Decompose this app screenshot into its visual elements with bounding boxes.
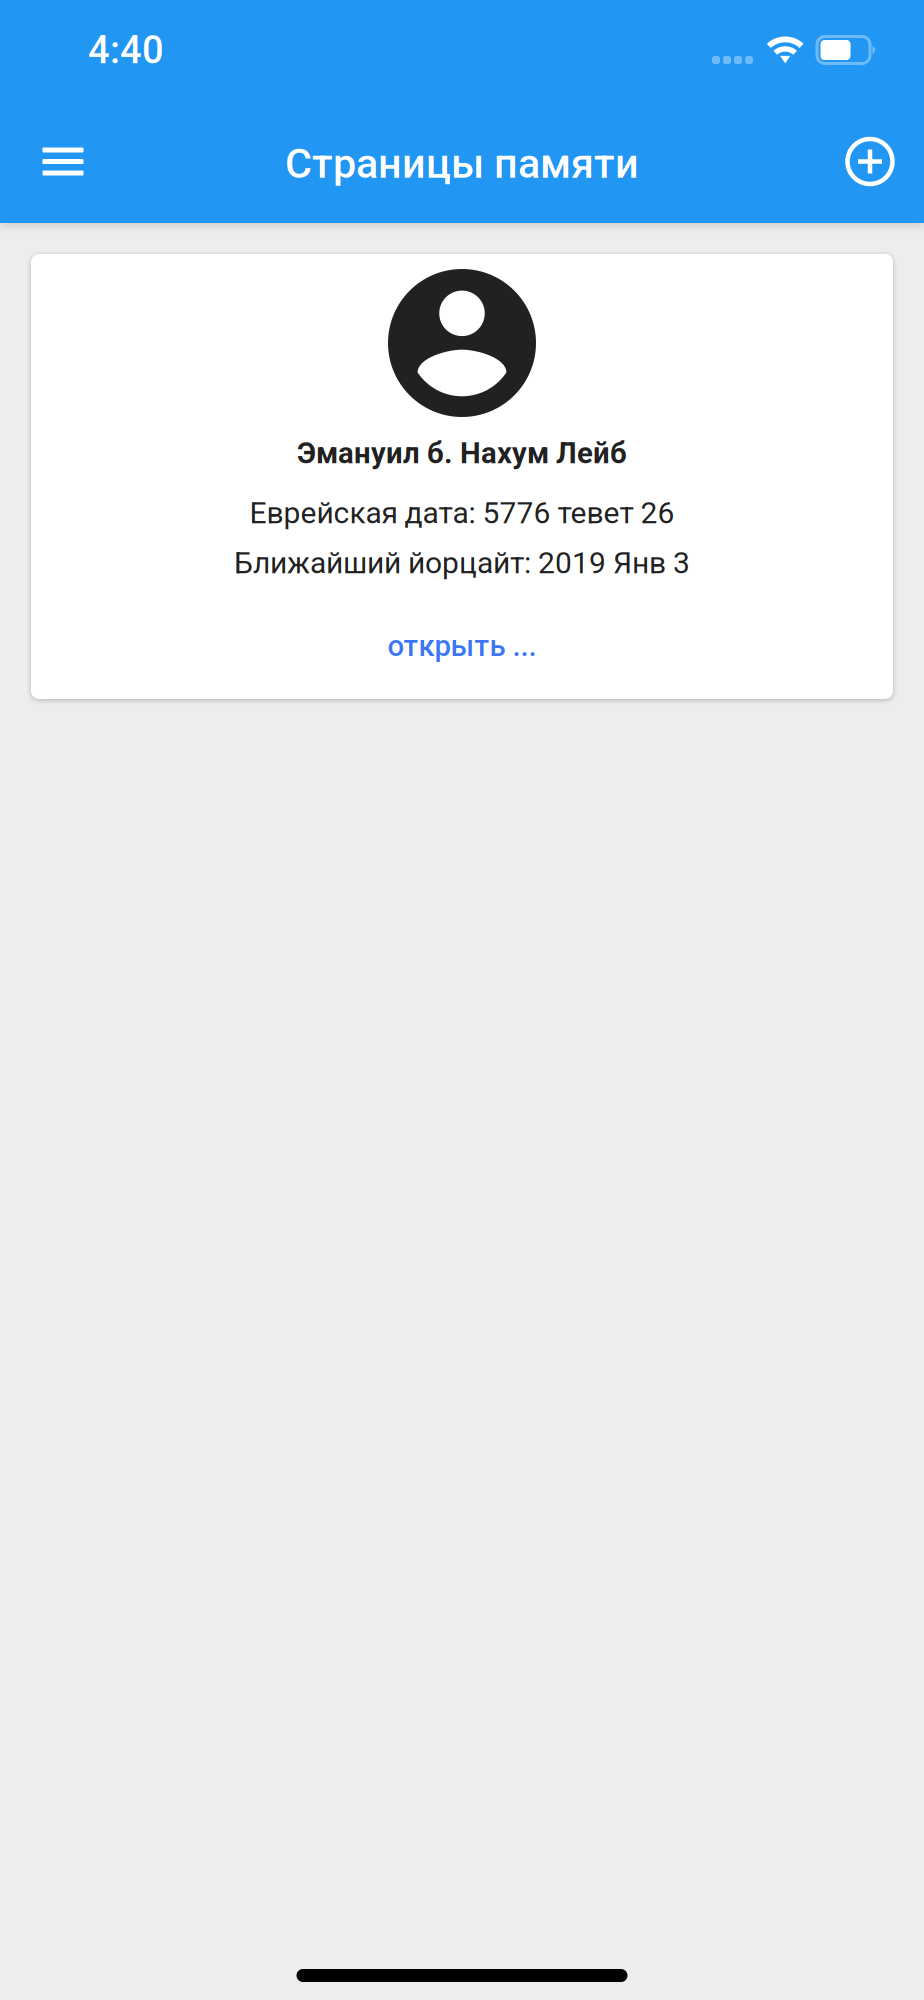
staticText: Еврейская дата: 5776 тевет 26 [249,495,674,531]
button[interactable]: Menu [21,119,105,203]
staticText: открыть ... [387,629,536,663]
staticText: Эмануил б. Нахум Лейб [297,436,627,470]
button[interactable]: Add [828,119,912,203]
staticText: 4:40 [88,28,164,72]
button[interactable]: открыть ... [359,616,564,676]
staticText: Страницы памяти [285,139,639,188]
staticText: Ближайший йорцайт: 2019 Янв 3 [234,545,690,581]
